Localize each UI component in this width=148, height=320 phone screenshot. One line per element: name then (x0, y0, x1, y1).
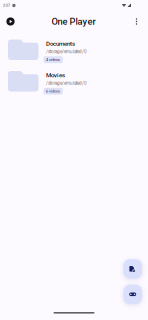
staticText: Movies (46, 71, 65, 79)
staticText: 6 videos (46, 89, 60, 93)
button[interactable]: Open link (123, 285, 142, 304)
button[interactable]: Movies (0, 65, 148, 97)
button[interactable]: One Player (2, 13, 19, 30)
staticText: /storage/emulated/0 (46, 81, 87, 86)
button[interactable]: Search files (123, 259, 142, 279)
button[interactable]: Documents (0, 34, 148, 65)
button[interactable]: More options (128, 13, 145, 30)
staticText: 2:07 (3, 3, 10, 8)
staticText: 4 videos (46, 58, 60, 62)
staticText: One Player (51, 16, 95, 27)
staticText: Documents (46, 40, 75, 47)
staticText: /storage/emulated/0 (46, 49, 87, 54)
